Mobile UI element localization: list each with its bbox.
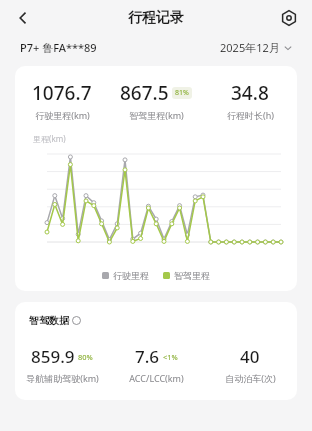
staticText: 80% — [78, 352, 93, 362]
button[interactable]: 2025年12月 — [220, 40, 292, 55]
staticText: P7+ 鲁FA***89 — [20, 40, 97, 55]
button[interactable]: 行驶里程 — [102, 270, 149, 281]
button[interactable]: 智驾数据 — [29, 314, 81, 327]
staticText: 里程(km) — [33, 133, 66, 144]
staticText: 2025年12月 — [220, 40, 280, 55]
staticText: 智驾里程 — [174, 270, 210, 281]
other: Info — [72, 316, 81, 325]
staticText: 81% — [175, 88, 189, 98]
staticText: 自动泊车(次) — [225, 372, 276, 384]
staticText: 7.6 — [135, 345, 160, 368]
button[interactable]: 1076.7 — [15, 80, 109, 121]
button[interactable]: 867.5 — [109, 80, 203, 121]
staticText: ACC/LCC(km) — [129, 372, 184, 384]
button[interactable]: Settings — [274, 3, 304, 33]
staticText: 859.9 — [31, 345, 75, 368]
staticText: 1076.7 — [32, 80, 92, 106]
button[interactable]: 40 — [203, 345, 297, 384]
staticText: 行驶里程(km) — [35, 109, 90, 121]
button[interactable]: Back — [8, 3, 38, 33]
staticText: 40 — [240, 345, 260, 368]
staticText: 导航辅助驾驶(km) — [26, 372, 99, 384]
button[interactable]: 34.8 — [203, 80, 297, 121]
button[interactable]: 智驾里程 — [163, 270, 210, 281]
button[interactable]: 859.9 — [15, 345, 109, 384]
staticText: 智驾数据 — [29, 314, 69, 327]
staticText: 智驾里程(km) — [129, 109, 184, 121]
staticText: 34.8 — [231, 80, 269, 106]
staticText: 867.5 — [120, 80, 169, 106]
staticText: 行程时长(h) — [227, 109, 274, 121]
staticText: 行程记录 — [128, 9, 184, 27]
staticText: <1% — [163, 352, 178, 362]
staticText: 行驶里程 — [113, 270, 149, 281]
button[interactable]: 7.6 — [109, 345, 203, 384]
